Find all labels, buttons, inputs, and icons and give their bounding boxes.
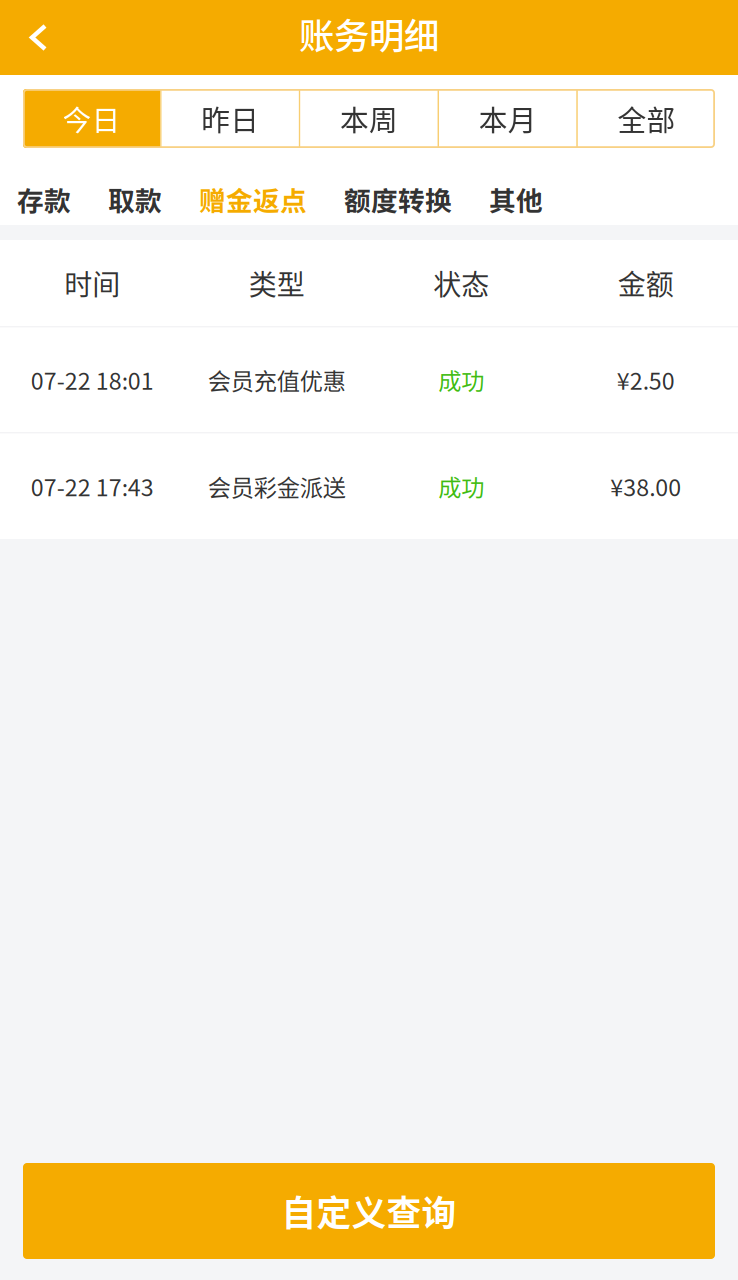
staticText: 07-22 17:43 (31, 469, 154, 503)
staticText: 赠金返点 (199, 180, 307, 218)
staticText: 昨日 (201, 98, 259, 139)
button[interactable]: Back (0, 0, 88, 75)
staticText: 全部 (617, 98, 675, 139)
button[interactable]: 存款 (0, 173, 89, 225)
staticText: 金额 (618, 263, 674, 303)
staticText: 今日 (63, 98, 121, 139)
staticText: 自定义查询 (281, 1186, 456, 1236)
staticText: 状态 (433, 263, 489, 303)
staticText: 取款 (108, 180, 162, 218)
staticText: 其他 (489, 180, 543, 218)
staticText: 07-22 18:01 (31, 363, 154, 397)
button[interactable]: 取款 (89, 173, 180, 225)
staticText: 成功 (438, 469, 484, 503)
button[interactable]: 本月 (439, 89, 576, 148)
staticText: 会员彩金派送 (208, 469, 346, 503)
button[interactable]: 自定义查询 (23, 1163, 715, 1259)
staticText: 本月 (479, 98, 537, 139)
button[interactable]: 全部 (578, 89, 715, 148)
button[interactable]: 07-22 18:01 (0, 327, 738, 432)
staticText: 账务明细 (299, 8, 439, 59)
staticText: ¥38.00 (610, 469, 681, 503)
button[interactable]: 昨日 (162, 89, 299, 148)
button[interactable]: 赠金返点 (180, 173, 325, 225)
staticText: 时间 (64, 263, 120, 303)
staticText: 会员充值优惠 (208, 363, 346, 397)
staticText: 额度转换 (344, 180, 452, 218)
button[interactable]: 其他 (470, 173, 561, 225)
staticText: 类型 (249, 263, 305, 303)
button[interactable]: 今日 (23, 89, 160, 148)
staticText: 成功 (438, 363, 484, 397)
button[interactable]: 本周 (300, 89, 437, 148)
staticText: 本周 (340, 98, 398, 139)
button[interactable]: 额度转换 (325, 173, 470, 225)
staticText: ¥2.50 (617, 363, 675, 397)
staticText: 存款 (17, 180, 71, 218)
button[interactable]: 07-22 17:43 (0, 433, 738, 539)
